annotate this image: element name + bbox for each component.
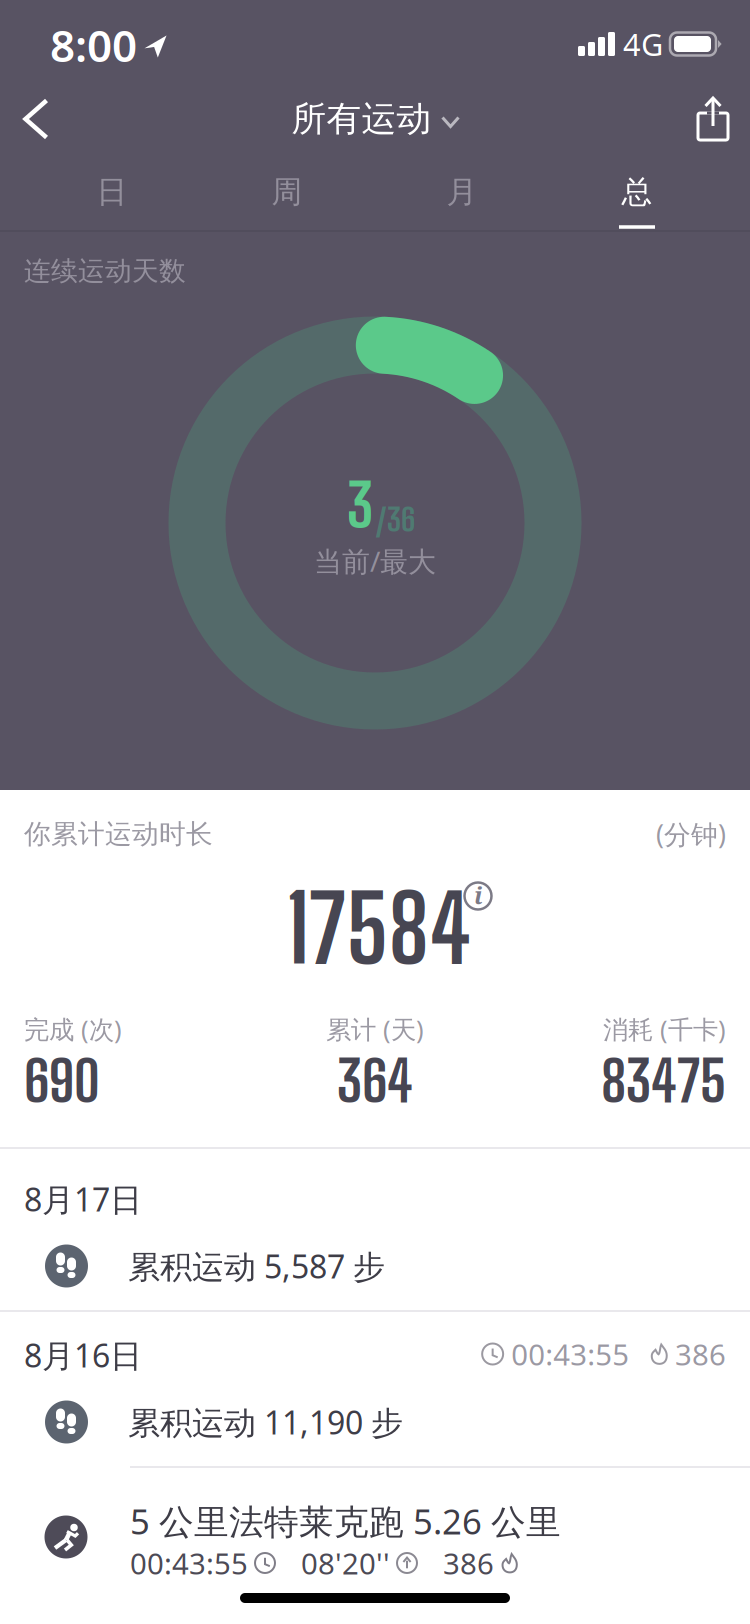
staticText: 你累计运动时长 — [24, 818, 213, 850]
staticText: 00:43:55 — [511, 1334, 629, 1373]
staticText: 8:00 — [50, 16, 137, 74]
staticText: 消耗 (千卡) — [603, 1012, 726, 1046]
button[interactable]: Share — [686, 88, 740, 150]
staticText: 月 — [446, 173, 477, 211]
staticText: 当前/最大 — [314, 542, 436, 580]
staticText: 周 — [271, 173, 302, 211]
button[interactable]: 累积运动 11,190 步 — [0, 1379, 750, 1465]
staticText: 日 — [96, 173, 127, 211]
staticText: 83475 — [601, 1047, 726, 1115]
staticText: 00:43:55 — [130, 1543, 248, 1582]
button[interactable]: 周 — [202, 157, 372, 227]
staticText: 5 公里法特莱克跑 5.26 公里 — [130, 1498, 561, 1544]
staticText: 累积运动 11,190 步 — [128, 1401, 403, 1443]
staticText: 累积运动 5,587 步 — [128, 1245, 385, 1287]
staticText: 386 — [443, 1543, 494, 1582]
staticText: 累计 (天) — [326, 1012, 424, 1046]
button[interactable]: 5 公里法特莱克跑 5.26 公里 — [0, 1482, 750, 1602]
staticText: 08'20'' — [301, 1543, 390, 1582]
staticText: 386 — [675, 1334, 726, 1373]
button[interactable]: Back — [11, 86, 60, 151]
staticText: 364 — [337, 1047, 413, 1115]
staticText: 所有运动 — [291, 98, 431, 140]
staticText: 8月16日 — [24, 1334, 142, 1376]
staticText: 4G — [623, 24, 663, 64]
staticText: 17584 — [286, 873, 471, 983]
button[interactable]: 总 — [552, 157, 722, 227]
staticText: 完成 (次) — [24, 1012, 122, 1046]
button[interactable]: 月 — [377, 157, 547, 227]
staticText: i — [474, 879, 482, 911]
staticText: 连续运动天数 — [24, 255, 186, 287]
button[interactable]: 累积运动 5,587 步 — [0, 1218, 750, 1314]
staticText: 3 — [347, 470, 373, 540]
staticText: 8月17日 — [24, 1178, 142, 1220]
staticText: /36 — [375, 501, 415, 538]
button[interactable]: 所有运动 — [291, 98, 458, 140]
button[interactable]: Info — [464, 882, 491, 909]
staticText: (分钟) — [656, 816, 726, 852]
staticText: 总 — [621, 173, 652, 211]
staticText: 690 — [24, 1047, 100, 1115]
button[interactable]: 日 — [27, 157, 197, 227]
